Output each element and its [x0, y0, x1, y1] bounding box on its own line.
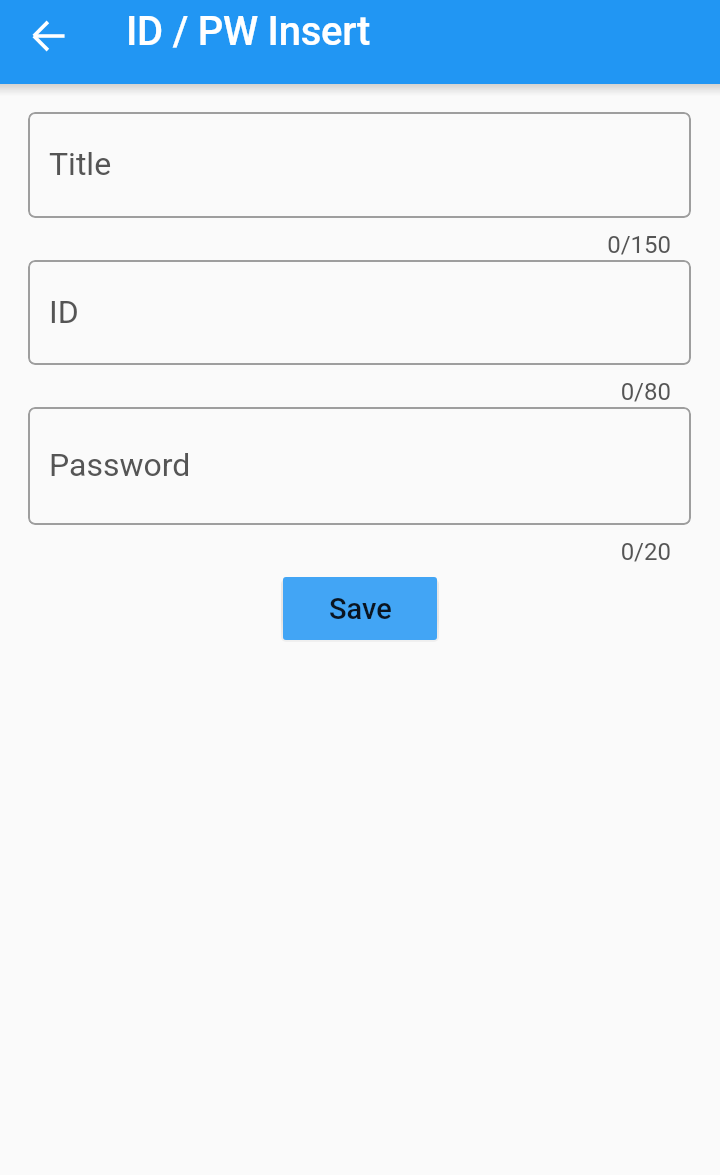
staticText: Save [329, 592, 392, 626]
staticText: ID / PW Insert [126, 8, 371, 55]
button[interactable]: Password [28, 407, 691, 525]
button[interactable]: Save [283, 577, 437, 640]
staticText: 0/80 [620, 378, 671, 406]
button[interactable]: Back [21, 8, 77, 64]
staticText: 0/20 [620, 538, 671, 566]
staticText: Password [49, 446, 191, 484]
button[interactable]: Title [28, 112, 691, 218]
button[interactable]: ID [28, 260, 691, 365]
staticText: 0/150 [607, 231, 671, 259]
staticText: ID [49, 293, 79, 331]
staticText: Title [49, 145, 112, 183]
